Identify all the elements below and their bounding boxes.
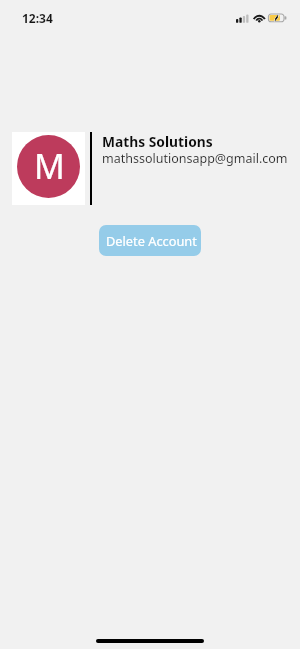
staticText: M: [34, 143, 65, 189]
staticText: Maths Solutions: [102, 132, 213, 151]
other: Signal, Wi-Fi and battery status: [0, 0, 300, 36]
button[interactable]: M: [0, 132, 300, 205]
button[interactable]: Delete Account: [99, 225, 201, 256]
staticText: 12:34: [22, 10, 53, 26]
staticText: mathssolutionsapp@gmail.com: [102, 150, 288, 167]
staticText: Delete Account: [106, 232, 197, 249]
